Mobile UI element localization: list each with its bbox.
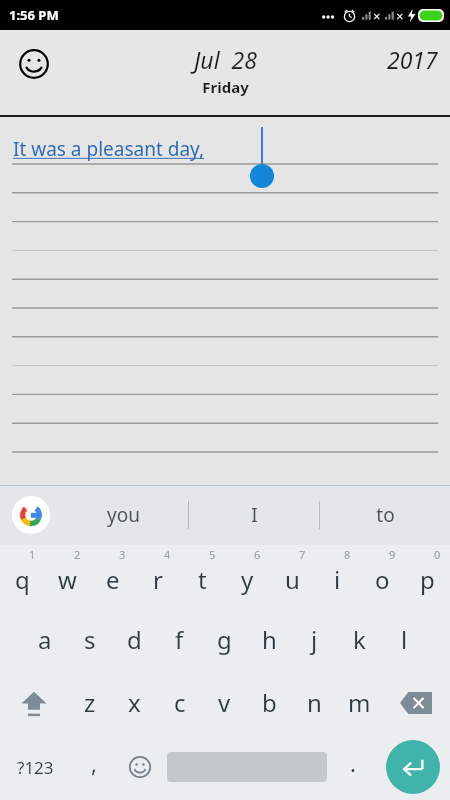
staticText: Friday <box>202 77 249 97</box>
staticText: r <box>153 563 163 596</box>
button[interactable]: Backspace <box>382 671 450 734</box>
button[interactable]: y <box>225 545 270 608</box>
staticText: you <box>107 502 140 528</box>
button[interactable]: a <box>22 608 67 671</box>
staticText: s <box>84 623 96 656</box>
button[interactable]: . <box>330 734 376 800</box>
staticText: a <box>38 623 52 656</box>
button[interactable]: Mood <box>14 44 54 84</box>
button[interactable]: ?123 <box>0 734 71 800</box>
button[interactable]: n <box>292 671 337 734</box>
staticText: I <box>251 502 258 528</box>
button[interactable]: Jul 28 <box>194 44 257 97</box>
button[interactable]: Shift <box>0 671 67 734</box>
staticText: It was a pleasant day, <box>13 136 205 162</box>
button[interactable]: x <box>112 671 157 734</box>
button[interactable]: f <box>157 608 202 671</box>
staticText: u <box>285 563 300 596</box>
button[interactable]: k <box>337 608 382 671</box>
button[interactable]: d <box>112 608 157 671</box>
button[interactable]: z <box>67 671 112 734</box>
staticText: 9 <box>389 547 396 562</box>
button[interactable]: 2017 <box>387 44 438 75</box>
staticText: ?123 <box>17 756 54 779</box>
button[interactable]: It was a pleasant day, <box>0 117 450 485</box>
staticText: 2 <box>74 547 81 562</box>
staticText: 1:56 PM <box>9 6 59 24</box>
button[interactable]: m <box>337 671 382 734</box>
button[interactable]: I <box>189 485 319 545</box>
button[interactable]: c <box>157 671 202 734</box>
staticText: y <box>241 563 254 596</box>
staticText: 1 <box>29 547 36 562</box>
button[interactable]: j <box>292 608 337 671</box>
staticText: v <box>218 686 231 719</box>
staticText: i <box>334 563 341 596</box>
button[interactable]: p <box>405 545 450 608</box>
button[interactable]: r <box>135 545 180 608</box>
button[interactable]: Google <box>12 496 50 534</box>
staticText: g <box>217 623 232 656</box>
button[interactable]: v <box>202 671 247 734</box>
button[interactable]: b <box>247 671 292 734</box>
button[interactable]: i <box>315 545 360 608</box>
staticText: 8 <box>344 547 351 562</box>
staticText: e <box>106 563 120 596</box>
staticText: q <box>15 563 30 596</box>
staticText: j <box>311 623 318 656</box>
staticText: Jul 28 <box>194 44 257 75</box>
button[interactable]: g <box>202 608 247 671</box>
staticText: 6 <box>254 547 261 562</box>
staticText: m <box>348 686 371 719</box>
button[interactable]: l <box>382 608 427 671</box>
staticText: 5 <box>209 547 216 562</box>
button[interactable]: e <box>90 545 135 608</box>
button[interactable]: w <box>45 545 90 608</box>
staticText: d <box>127 623 142 656</box>
staticText: 7 <box>299 547 306 562</box>
staticText: . <box>350 748 356 778</box>
button[interactable]: Space <box>163 734 330 800</box>
staticText: t <box>198 563 207 596</box>
staticText: , <box>91 748 97 778</box>
staticText: 3 <box>119 547 126 562</box>
staticText: k <box>353 623 366 656</box>
staticText: c <box>174 686 186 719</box>
button[interactable]: Enter <box>376 734 450 800</box>
staticText: p <box>420 563 435 596</box>
button[interactable]: Emoji <box>117 734 163 800</box>
button[interactable]: o <box>360 545 405 608</box>
staticText: to <box>376 502 395 528</box>
button[interactable]: h <box>247 608 292 671</box>
button[interactable]: q <box>0 545 45 608</box>
staticText: f <box>175 623 184 656</box>
staticText: l <box>401 623 408 656</box>
button[interactable]: u <box>270 545 315 608</box>
staticText: z <box>84 686 96 719</box>
button[interactable]: to <box>320 485 450 545</box>
staticText: h <box>262 623 277 656</box>
staticText: 4 <box>164 547 171 562</box>
button[interactable]: t <box>180 545 225 608</box>
button[interactable]: s <box>67 608 112 671</box>
staticText: n <box>307 686 322 719</box>
staticText: b <box>262 686 277 719</box>
staticText: w <box>58 563 77 596</box>
staticText: 0 <box>434 547 441 562</box>
button[interactable]: you <box>58 485 188 545</box>
staticText: o <box>375 563 390 596</box>
button[interactable]: , <box>71 734 117 800</box>
staticText: x <box>128 686 141 719</box>
